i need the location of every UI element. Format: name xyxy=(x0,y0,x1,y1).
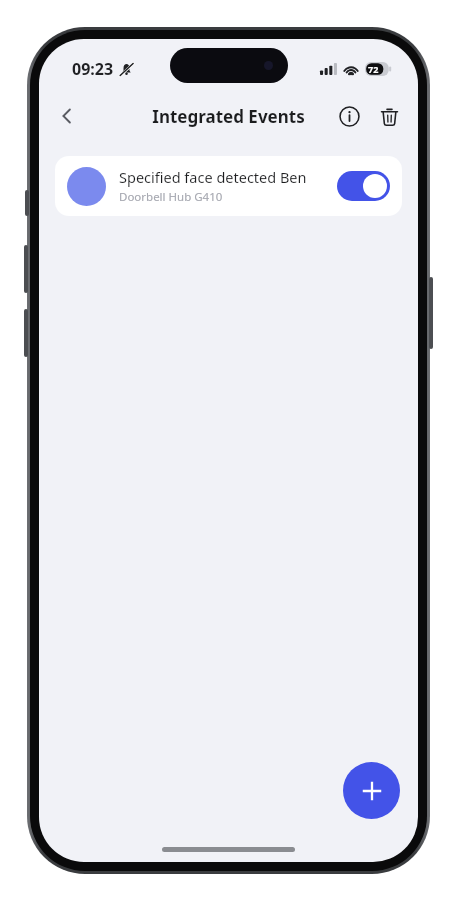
staticText: 72 xyxy=(368,63,379,75)
staticText: 09:23 xyxy=(72,58,114,80)
button[interactable]: Information xyxy=(330,97,368,135)
button[interactable]: Specified face detected Ben xyxy=(55,156,402,216)
staticText: Specified face detected Ben xyxy=(119,167,307,187)
button[interactable]: Add event xyxy=(343,762,400,819)
button[interactable]: Delete xyxy=(370,97,408,135)
button[interactable]: Back xyxy=(47,96,87,136)
staticText: Doorbell Hub G410 xyxy=(119,189,223,205)
staticText: Integrated Events xyxy=(152,105,305,128)
button[interactable]: Toggle event on xyxy=(337,171,390,201)
